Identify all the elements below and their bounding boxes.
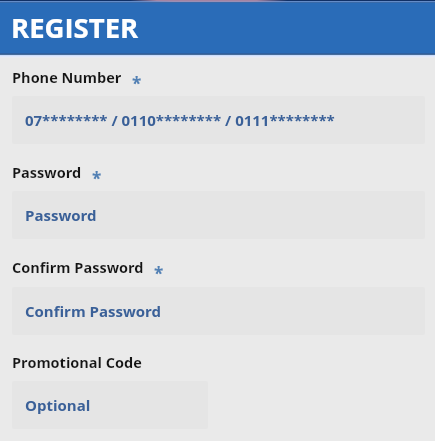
staticText: Optional [25,395,91,415]
staticText: Confirm Password [25,301,162,321]
staticText: Password [25,205,97,225]
staticText: * [92,167,102,190]
staticText: REGISTER [11,9,139,46]
staticText: * [154,262,164,285]
button[interactable]: Optional [12,381,208,429]
button[interactable]: 07******** / 0110******** / 0111******** [12,96,425,144]
staticText: Password [12,163,82,183]
staticText: * [132,72,142,95]
staticText: Confirm Password [12,258,144,278]
button[interactable]: Password [12,191,425,239]
staticText: Phone Number [12,68,122,88]
staticText: Promotional Code [12,353,142,373]
button[interactable]: Confirm Password [12,287,425,335]
staticText: 07******** / 0110******** / 0111******** [25,110,335,130]
